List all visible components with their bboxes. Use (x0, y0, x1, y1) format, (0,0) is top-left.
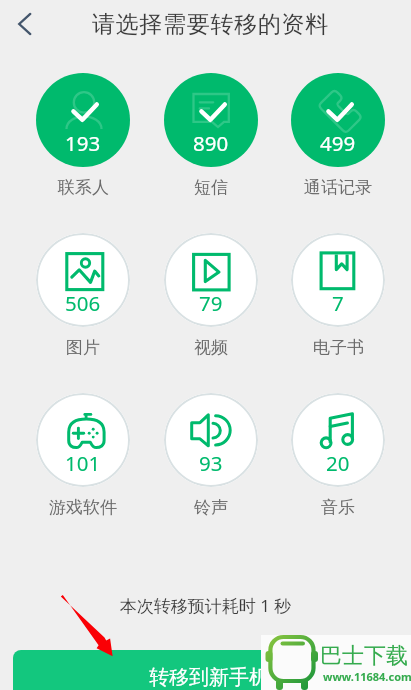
staticText: 193 (65, 129, 101, 157)
staticText: 20 (326, 449, 350, 477)
staticText: 游戏软件 (49, 497, 117, 518)
staticText: 本次转移预计耗时 1 秒 (0, 594, 411, 617)
button[interactable]: 转移到新手机 (13, 650, 398, 690)
staticText: 通话记录 (304, 177, 372, 198)
staticText: 7 (332, 289, 344, 317)
staticText: 499 (320, 129, 356, 157)
staticText: 93 (199, 449, 223, 477)
button[interactable]: Back (1, 0, 49, 48)
button[interactable]: 20 (291, 393, 385, 518)
staticText: 短信 (194, 177, 228, 198)
staticText: 图片 (66, 337, 100, 358)
staticText: 联系人 (58, 177, 109, 198)
button[interactable]: 93 (164, 393, 258, 518)
staticText: www.11684.com (323, 669, 411, 684)
button[interactable]: 890 (164, 73, 258, 198)
staticText: 视频 (194, 337, 228, 358)
button[interactable]: 193 (36, 73, 130, 198)
staticText: 890 (193, 129, 229, 157)
staticText: 请选择需要转移的资料 (5, 10, 411, 39)
staticText: 79 (199, 289, 223, 317)
staticText: 转移到新手机 (149, 665, 269, 690)
button[interactable]: 101 (36, 393, 130, 518)
button[interactable]: 79 (164, 233, 258, 358)
staticText: 506 (65, 289, 101, 317)
staticText: 电子书 (313, 337, 364, 358)
staticText: 音乐 (321, 497, 355, 518)
button[interactable]: 506 (36, 233, 130, 358)
staticText: 巴士下载 (320, 642, 408, 670)
staticText: 铃声 (194, 497, 228, 518)
staticText: 101 (65, 449, 101, 477)
button[interactable]: 499 (291, 73, 385, 198)
button[interactable]: 7 (291, 233, 385, 358)
